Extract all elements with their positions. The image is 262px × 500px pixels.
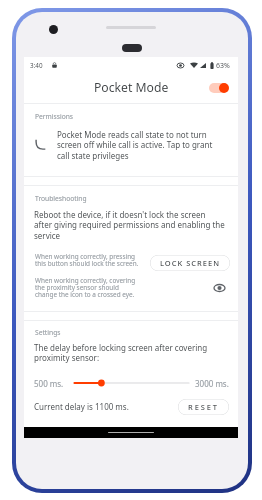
button[interactable]: LOCK SCREEN: [150, 255, 230, 271]
staticText: 63%: [216, 61, 230, 71]
staticText: 3000 ms.: [195, 378, 229, 389]
button[interactable]: Proximity sensor state: [210, 279, 228, 297]
staticText: When working correctly, covering the pro…: [35, 276, 140, 299]
staticText: RESET: [188, 402, 219, 412]
staticText: Reboot the device, if it doesn't lock th…: [34, 209, 225, 242]
staticText: Pocket Mode reads call state to not turn…: [57, 129, 219, 162]
staticText: Troubleshooting: [35, 194, 87, 203]
button[interactable]: [27, 126, 231, 164]
staticText: When working correctly, pressing this bu…: [35, 252, 140, 268]
staticText: Settings: [35, 328, 61, 337]
button[interactable]: Enable Pocket Mode: [204, 78, 233, 97]
staticText: 3:40: [30, 61, 43, 70]
button[interactable]: RESET: [178, 399, 229, 415]
button[interactable]: Delay slider: [70, 376, 194, 390]
staticText: LOCK SCREEN: [160, 258, 220, 268]
staticText: Pocket Mode: [94, 79, 169, 96]
staticText: Current delay is 1100 ms.: [34, 401, 129, 412]
staticText: The delay before locking screen after co…: [34, 342, 225, 364]
staticText: 500 ms.: [34, 378, 64, 389]
staticText: Permissions: [35, 112, 74, 121]
